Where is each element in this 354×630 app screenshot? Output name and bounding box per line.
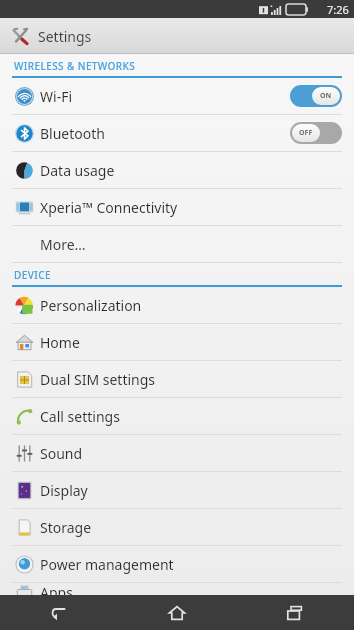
button[interactable]: Data usage <box>0 152 354 188</box>
button[interactable]: Apps <box>0 583 354 595</box>
staticText: ON <box>320 91 332 101</box>
button[interactable]: Power management <box>0 546 354 582</box>
button[interactable]: Call settings <box>0 398 354 434</box>
staticText: Apps <box>40 583 354 595</box>
button[interactable]: Bluetooth <box>0 115 354 151</box>
button[interactable]: Wi-Fi <box>0 78 354 114</box>
staticText: Xperia™ Connectivity <box>40 198 354 217</box>
staticText: Settings <box>38 27 92 46</box>
staticText: Power management <box>40 555 354 574</box>
button[interactable]: Sound <box>0 435 354 471</box>
button[interactable]: Storage <box>0 509 354 545</box>
button[interactable]: More… <box>0 226 354 262</box>
staticText: Data usage <box>40 161 354 180</box>
button[interactable]: Switch on <box>290 85 342 107</box>
staticText: Call settings <box>40 407 354 426</box>
staticText: Display <box>40 481 354 500</box>
button[interactable]: Xperia™ Connectivity <box>0 189 354 225</box>
button[interactable]: Personalization <box>0 287 354 323</box>
button[interactable]: Settings <box>0 18 354 54</box>
staticText: Home <box>40 333 354 352</box>
button[interactable]: Back <box>0 595 118 630</box>
staticText: More… <box>40 235 354 254</box>
staticText: Storage <box>40 518 354 537</box>
button[interactable]: Display <box>0 472 354 508</box>
button[interactable]: Switch off <box>290 122 342 144</box>
staticText: DEVICE <box>14 268 51 282</box>
staticText: WIRELESS & NETWORKS <box>14 59 136 73</box>
staticText: Dual SIM settings <box>40 370 354 389</box>
button[interactable]: Home <box>118 595 236 630</box>
staticText: OFF <box>299 128 313 138</box>
staticText: Personalization <box>40 296 354 315</box>
staticText: Bluetooth <box>40 124 290 143</box>
staticText: 7:26 <box>327 2 349 17</box>
button[interactable]: Dual SIM settings <box>0 361 354 397</box>
button[interactable]: Recent apps <box>236 595 354 630</box>
staticText: Sound <box>40 444 354 463</box>
button[interactable]: Home <box>0 324 354 360</box>
staticText: Wi-Fi <box>40 87 290 106</box>
